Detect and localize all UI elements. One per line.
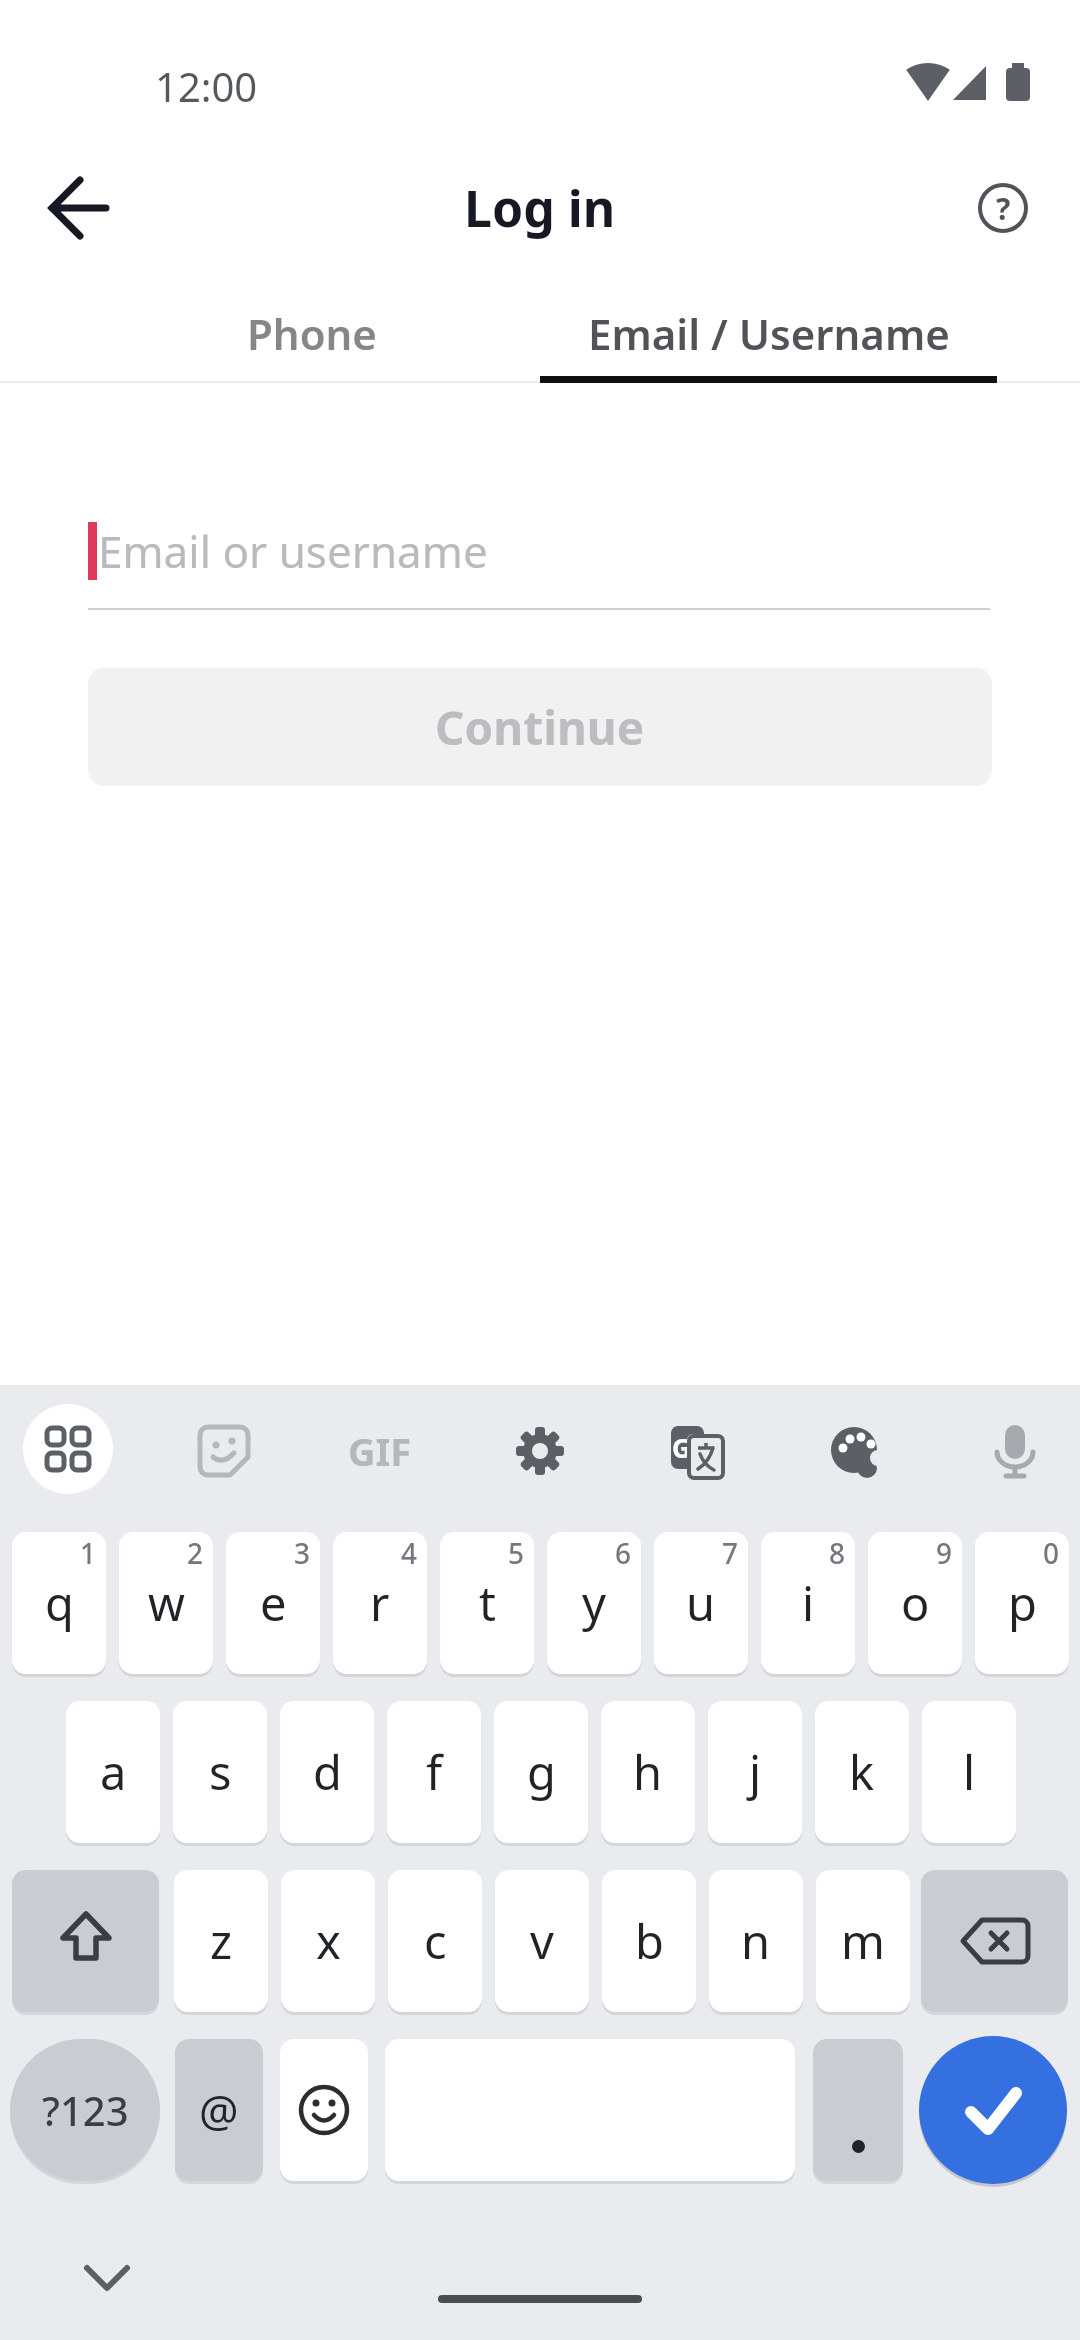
- staticText: ?123: [42, 2083, 129, 2137]
- button[interactable]: G: [653, 1406, 743, 1496]
- button[interactable]: v: [495, 1870, 589, 2012]
- button[interactable]: f: [387, 1701, 481, 1843]
- button[interactable]: u: [654, 1532, 748, 1674]
- staticText: x: [316, 1909, 341, 1973]
- button[interactable]: GIF: [335, 1406, 425, 1496]
- button[interactable]: x: [281, 1870, 375, 2012]
- button[interactable]: [970, 1406, 1060, 1496]
- staticText: @: [199, 2080, 239, 2140]
- staticText: p: [1008, 1571, 1037, 1635]
- staticText: g: [527, 1740, 556, 1804]
- staticText: 7: [722, 1534, 739, 1572]
- staticText: Log in: [464, 174, 616, 242]
- button[interactable]: r: [333, 1532, 427, 1674]
- button[interactable]: z: [174, 1870, 268, 2012]
- button[interactable]: m: [816, 1870, 910, 2012]
- staticText: Email / Username: [588, 305, 950, 362]
- button[interactable]: s: [173, 1701, 267, 1843]
- button[interactable]: n: [709, 1870, 803, 2012]
- button[interactable]: d: [280, 1701, 374, 1843]
- button[interactable]: j: [708, 1701, 802, 1843]
- staticText: i: [802, 1571, 815, 1635]
- button[interactable]: ?: [973, 178, 1033, 238]
- staticText: v: [530, 1909, 554, 1973]
- button[interactable]: [12, 1870, 159, 2012]
- staticText: z: [210, 1909, 233, 1973]
- button[interactable]: Continue: [88, 668, 992, 786]
- button[interactable]: i: [761, 1532, 855, 1674]
- staticText: h: [633, 1740, 663, 1804]
- staticText: 12:00: [155, 59, 258, 113]
- button[interactable]: Phone: [83, 284, 540, 382]
- button[interactable]: [811, 1406, 901, 1496]
- staticText: 0: [1043, 1534, 1060, 1572]
- button[interactable]: [38, 170, 118, 246]
- staticText: 3: [294, 1534, 311, 1572]
- button[interactable]: b: [602, 1870, 696, 2012]
- staticText: u: [686, 1571, 716, 1635]
- button[interactable]: g: [494, 1701, 588, 1843]
- staticText: 6: [615, 1534, 632, 1572]
- staticText: r: [370, 1571, 390, 1635]
- button[interactable]: Email / Username: [540, 284, 997, 382]
- button[interactable]: [921, 1870, 1068, 2012]
- button[interactable]: k: [815, 1701, 909, 1843]
- staticText: Continue: [435, 696, 645, 759]
- staticText: t: [479, 1571, 496, 1635]
- staticText: n: [741, 1909, 771, 1973]
- staticText: GIF: [348, 1425, 412, 1477]
- staticText: 9: [936, 1534, 953, 1572]
- staticText: y: [582, 1571, 606, 1635]
- button[interactable]: t: [440, 1532, 534, 1674]
- staticText: 5: [508, 1534, 525, 1572]
- button[interactable]: h: [601, 1701, 695, 1843]
- staticText: c: [424, 1909, 447, 1973]
- staticText: e: [260, 1571, 287, 1635]
- button[interactable]: @: [175, 2039, 263, 2181]
- button[interactable]: ?123: [10, 2039, 160, 2181]
- button[interactable]: e: [226, 1532, 320, 1674]
- button[interactable]: w: [119, 1532, 213, 1674]
- button[interactable]: [179, 1406, 269, 1496]
- staticText: k: [849, 1740, 875, 1804]
- staticText: s: [209, 1740, 232, 1804]
- staticText: 2: [187, 1534, 204, 1572]
- button[interactable]: p: [975, 1532, 1069, 1674]
- staticText: Email or username: [98, 521, 488, 581]
- staticText: j: [749, 1740, 762, 1804]
- staticText: w: [148, 1571, 185, 1635]
- button[interactable]: q: [12, 1532, 106, 1674]
- button[interactable]: c: [388, 1870, 482, 2012]
- staticText: Phone: [247, 305, 377, 362]
- staticText: d: [313, 1740, 342, 1804]
- staticText: 4: [401, 1534, 418, 1572]
- staticText: ?: [996, 188, 1011, 229]
- button[interactable]: y: [547, 1532, 641, 1674]
- staticText: 1: [80, 1534, 97, 1572]
- button[interactable]: [495, 1406, 585, 1496]
- staticText: G: [672, 1430, 687, 1464]
- button[interactable]: a: [66, 1701, 160, 1843]
- button[interactable]: l: [922, 1701, 1016, 1843]
- button[interactable]: [23, 1404, 113, 1494]
- staticText: q: [45, 1571, 74, 1635]
- button[interactable]: [919, 2036, 1067, 2184]
- button[interactable]: Email or username: [88, 495, 992, 610]
- staticText: a: [100, 1740, 127, 1804]
- button[interactable]: [75, 2248, 139, 2308]
- button[interactable]: [813, 2039, 903, 2181]
- staticText: m: [841, 1909, 885, 1973]
- staticText: b: [635, 1909, 664, 1973]
- staticText: l: [963, 1740, 976, 1804]
- staticText: f: [426, 1740, 443, 1804]
- staticText: o: [901, 1571, 930, 1635]
- button[interactable]: o: [868, 1532, 962, 1674]
- button[interactable]: [280, 2039, 368, 2181]
- staticText: 8: [829, 1534, 846, 1572]
